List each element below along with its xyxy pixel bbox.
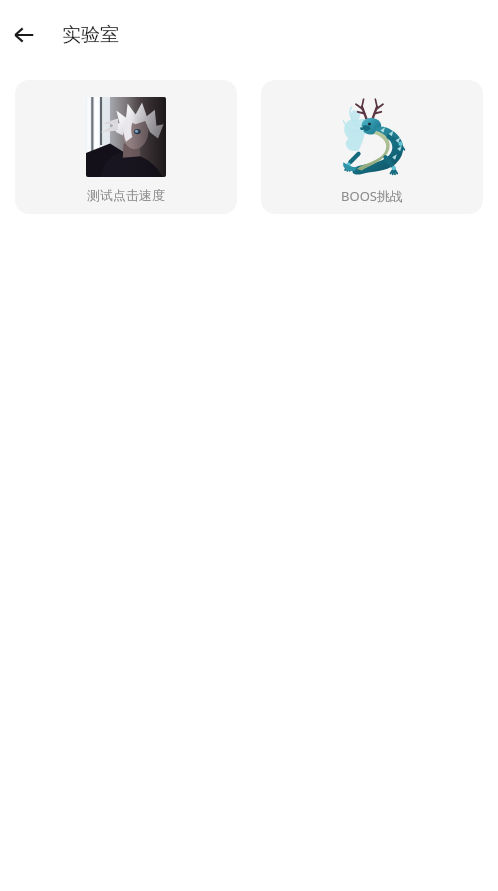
button[interactable]: Back — [4, 15, 44, 55]
button[interactable]: 测试点击速度 — [15, 80, 237, 214]
staticText: 实验室 — [62, 23, 119, 47]
button[interactable]: BOOS挑战 — [261, 80, 483, 214]
staticText: BOOS挑战 — [341, 187, 403, 205]
staticText: 测试点击速度 — [87, 187, 165, 203]
